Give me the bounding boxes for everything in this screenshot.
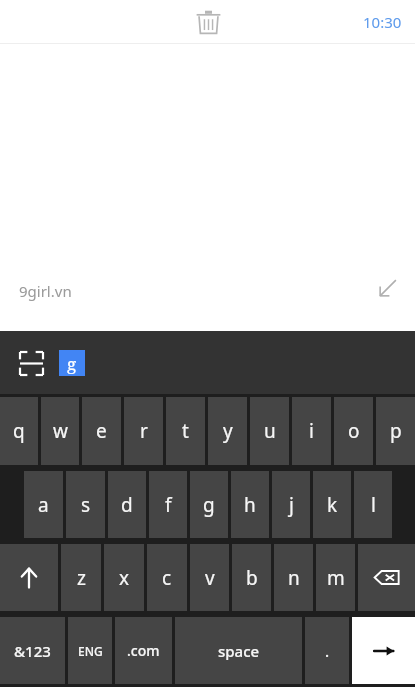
staticText: k [327, 492, 338, 518]
button[interactable]: y [208, 397, 247, 465]
button[interactable]: c [147, 544, 187, 611]
staticText: b [246, 565, 258, 591]
button[interactable]: Shift [0, 544, 58, 611]
button[interactable]: n [274, 544, 313, 611]
button[interactable]: x [104, 544, 144, 611]
button[interactable]: f [149, 471, 187, 538]
staticText: &123 [14, 641, 51, 661]
button[interactable]: z [61, 544, 101, 611]
button[interactable]: Delete [187, 1, 229, 43]
staticText: p [390, 418, 402, 444]
button[interactable]: b [232, 544, 271, 611]
button[interactable]: w [41, 397, 79, 465]
staticText: a [38, 492, 49, 518]
staticText: y [223, 418, 233, 444]
staticText: z [77, 565, 86, 591]
button[interactable]: Backspace [358, 544, 415, 611]
staticText: ENG [78, 643, 103, 659]
staticText: . [325, 641, 330, 661]
staticText: l [371, 492, 376, 518]
staticText: g [203, 492, 215, 518]
button[interactable]: e [82, 397, 121, 465]
staticText: n [288, 565, 300, 591]
button[interactable]: o [334, 397, 373, 465]
button[interactable]: q [0, 397, 38, 465]
staticText: 10:30 [363, 12, 402, 32]
staticText: h [244, 492, 256, 518]
staticText: space [218, 641, 260, 661]
staticText: q [13, 418, 25, 444]
staticText: o [348, 418, 360, 444]
button[interactable]: u [250, 397, 289, 465]
staticText: x [119, 565, 130, 591]
button[interactable]: p [376, 397, 415, 465]
button[interactable]: Hide keyboard [370, 271, 404, 305]
button[interactable]: . [305, 617, 349, 684]
staticText: u [264, 418, 276, 444]
button[interactable]: space [175, 617, 302, 684]
staticText: .com [127, 641, 160, 660]
staticText: i [309, 418, 314, 444]
staticText: m [327, 565, 345, 591]
staticText: r [140, 418, 148, 444]
button[interactable]: a [24, 471, 63, 538]
button[interactable]: h [231, 471, 269, 538]
button[interactable]: i [292, 397, 331, 465]
button[interactable]: r [124, 397, 163, 465]
button[interactable]: .com [115, 617, 172, 684]
button[interactable]: Google search [59, 350, 85, 376]
button[interactable]: t [166, 397, 205, 465]
staticText: g [67, 352, 77, 375]
button[interactable]: s [66, 471, 105, 538]
staticText: c [162, 565, 172, 591]
button[interactable]: k [313, 471, 351, 538]
staticText: v [205, 565, 215, 591]
staticText: s [81, 492, 91, 518]
button[interactable]: v [190, 544, 229, 611]
button[interactable]: Go [352, 617, 415, 684]
staticText: e [96, 418, 107, 444]
staticText: f [165, 492, 172, 518]
button[interactable]: g [190, 471, 228, 538]
staticText: t [182, 418, 189, 444]
staticText: j [289, 492, 294, 518]
staticText: d [121, 492, 133, 518]
staticText: w [53, 418, 68, 444]
button[interactable]: &123 [0, 617, 65, 684]
button[interactable]: m [316, 544, 355, 611]
button[interactable]: ENG [68, 617, 112, 684]
button[interactable]: d [108, 471, 146, 538]
button[interactable]: Scan code [13, 345, 49, 381]
button[interactable]: l [354, 471, 392, 538]
staticText: 9girl.vn [19, 281, 72, 301]
button[interactable]: j [272, 471, 310, 538]
